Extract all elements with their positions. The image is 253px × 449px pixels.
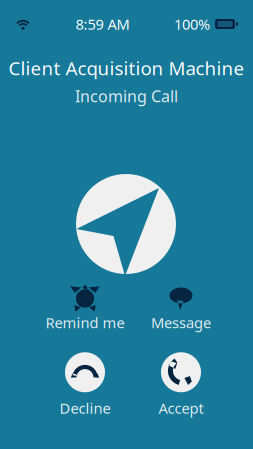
button[interactable]: Decline — [37, 352, 133, 418]
staticText: Incoming Call — [75, 85, 178, 107]
staticText: Accept — [158, 398, 203, 418]
staticText: 8:59 AM — [75, 14, 129, 34]
button[interactable]: Message — [133, 286, 229, 332]
button[interactable]: Wi-Fi — [15, 18, 31, 30]
staticText: 100% — [174, 14, 210, 34]
staticText: Remind me — [45, 313, 124, 332]
button[interactable]: Accept — [133, 352, 229, 418]
button[interactable]: Remind me — [37, 286, 133, 332]
staticText: Client Acquisition Machine — [8, 56, 244, 80]
staticText: Decline — [59, 398, 110, 418]
staticText: Message — [151, 313, 211, 332]
